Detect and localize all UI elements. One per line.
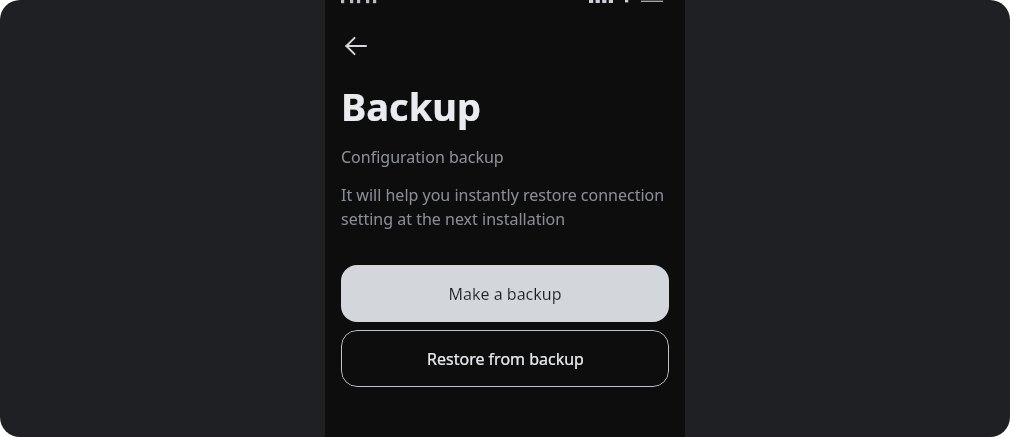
staticText: Make a backup (448, 283, 562, 305)
button[interactable]: Back (338, 28, 374, 64)
staticText: Restore from backup (427, 348, 584, 370)
button[interactable]: Restore from backup (341, 330, 669, 387)
staticText: Backup (341, 80, 481, 132)
button[interactable]: Make a backup (341, 265, 669, 322)
staticText: Configuration backup (341, 146, 504, 168)
staticText: It will help you instantly restore conne… (341, 184, 669, 230)
